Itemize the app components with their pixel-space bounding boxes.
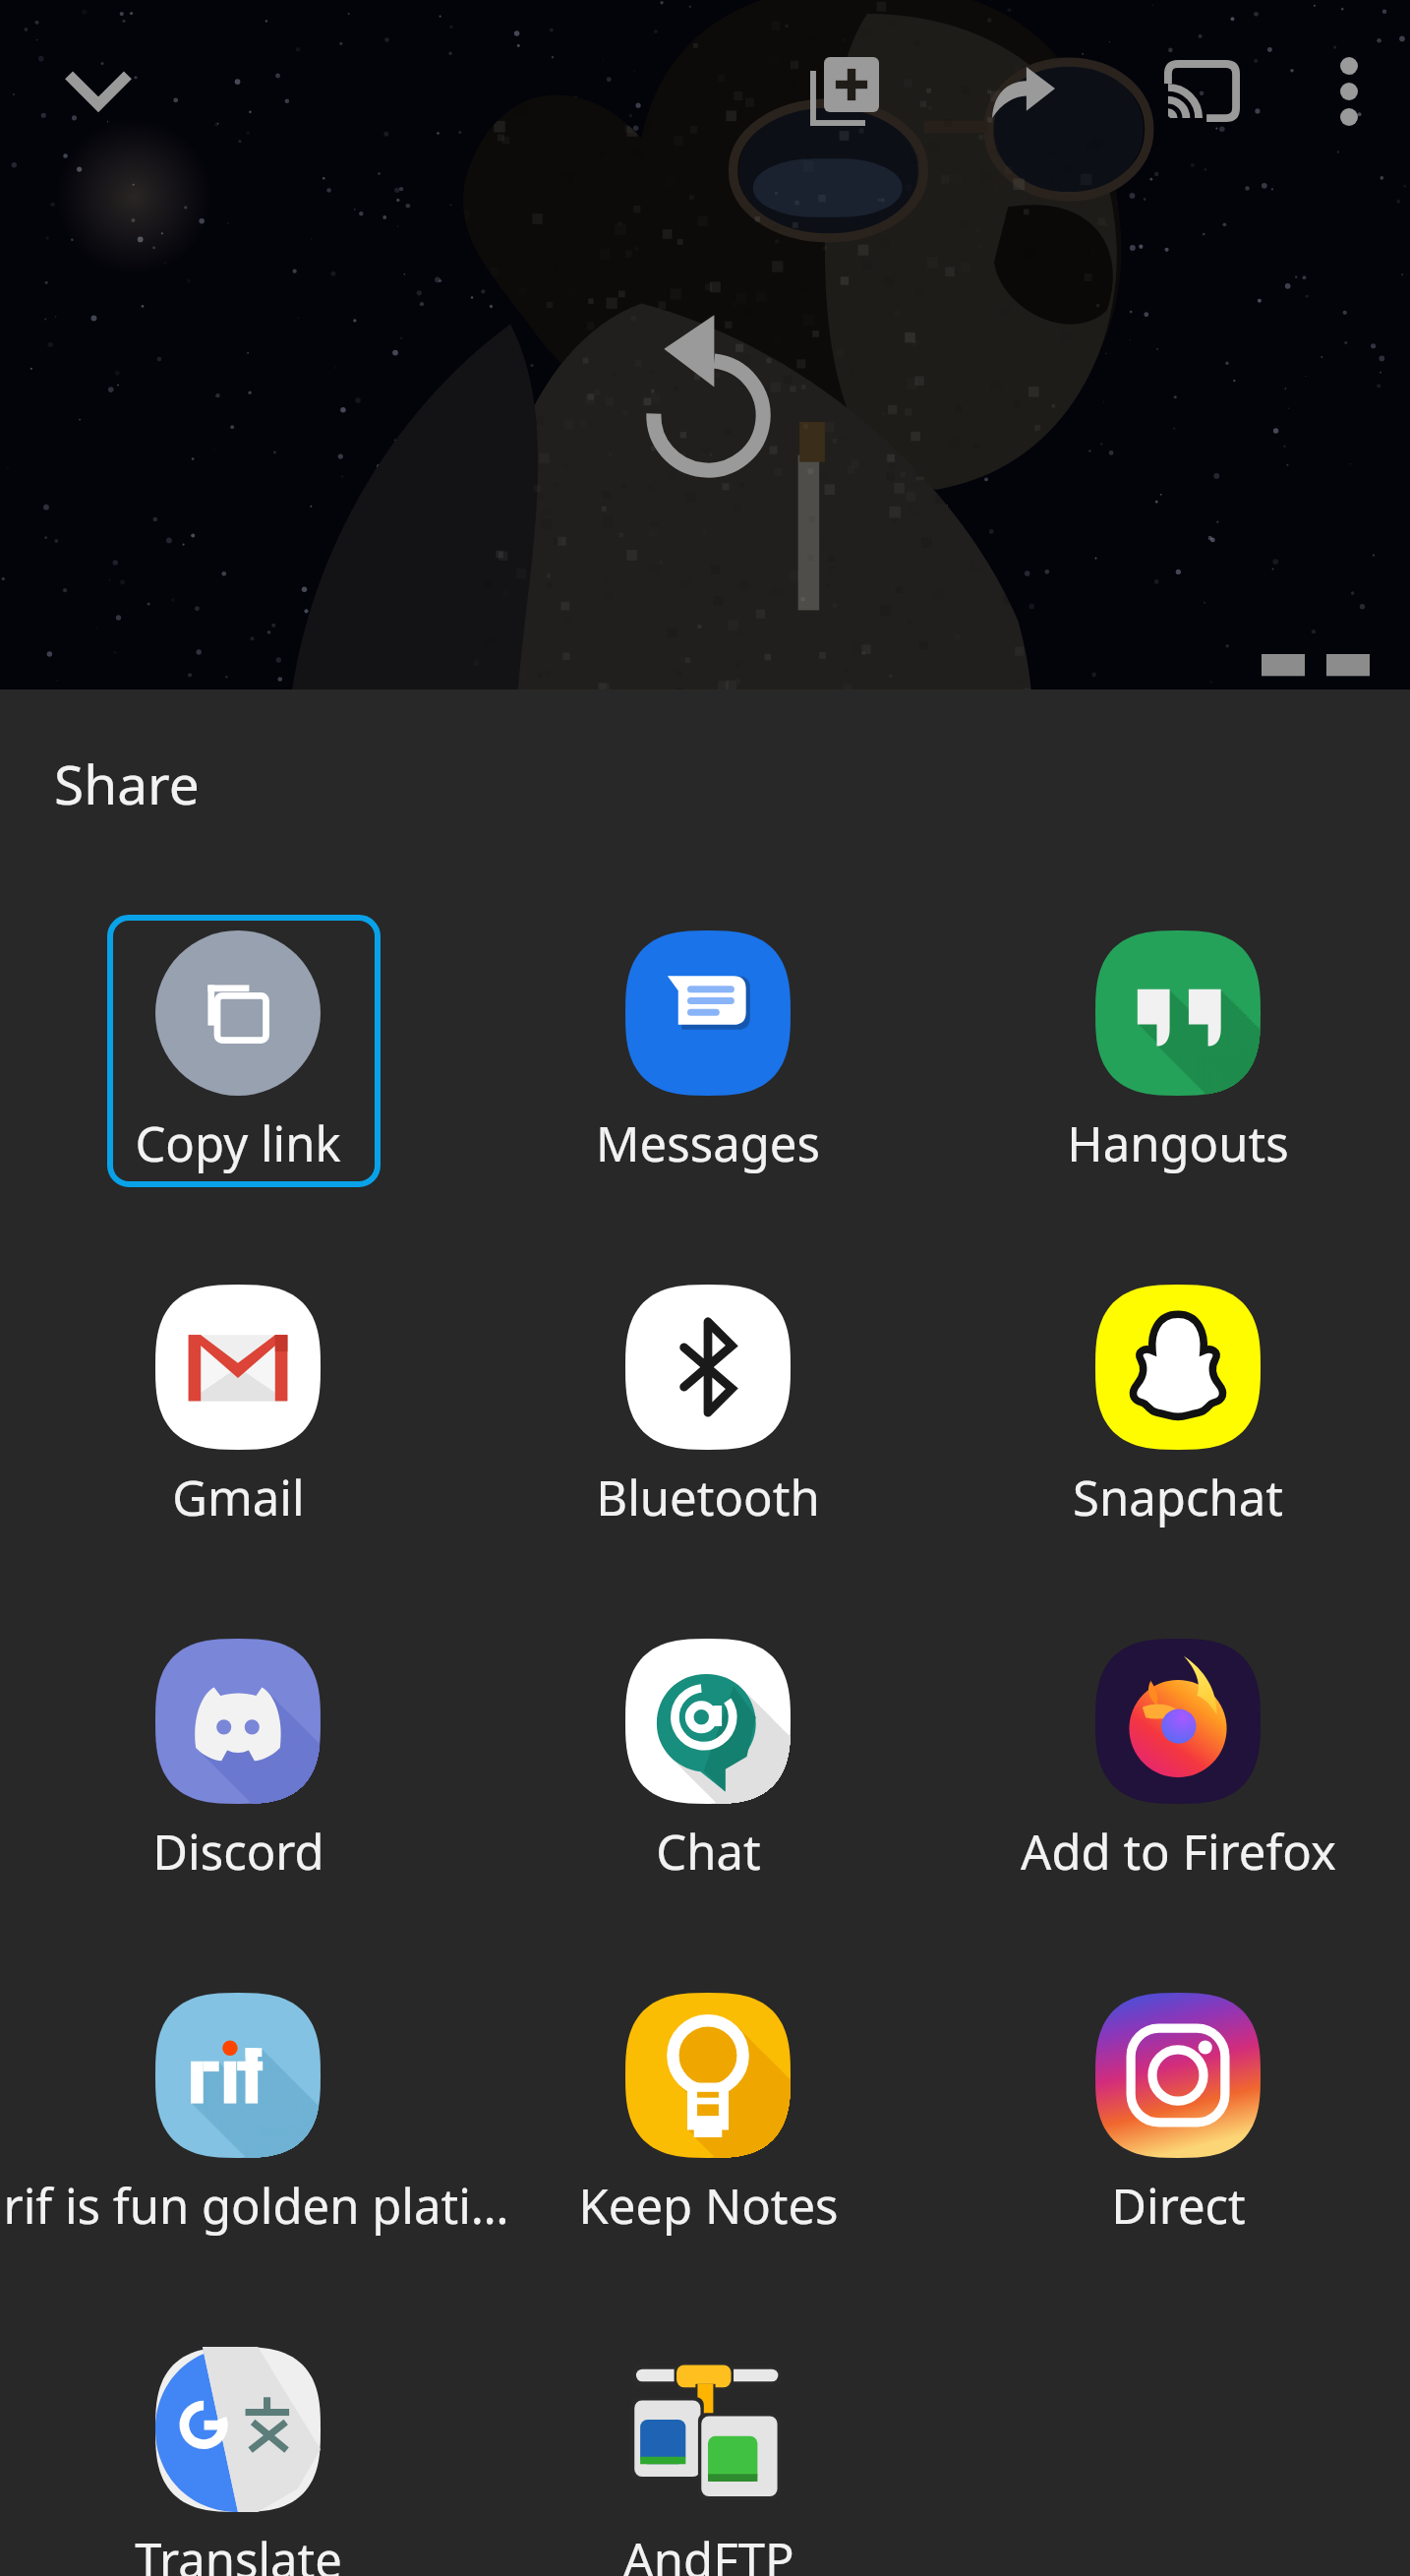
staticText: Direct: [1111, 2173, 1246, 2239]
button[interactable]: Share: [969, 37, 1079, 148]
staticText: Bluetooth: [596, 1465, 820, 1530]
button[interactable]: [101, 2331, 375, 2576]
staticText: Share: [54, 747, 200, 820]
staticText: rif is fun golden plati…: [3, 2173, 473, 2239]
staticText: Snapchat: [1073, 1465, 1283, 1530]
button[interactable]: Minimize: [49, 39, 147, 138]
button[interactable]: [101, 1623, 375, 1895]
button[interactable]: [571, 1977, 845, 2249]
staticText: Messages: [596, 1110, 820, 1176]
button[interactable]: Add to playlist: [790, 36, 900, 147]
button[interactable]: [571, 2331, 845, 2576]
button[interactable]: [571, 915, 845, 1187]
staticText: Discord: [152, 1819, 324, 1885]
staticText: Gmail: [172, 1465, 305, 1530]
staticText: AndFTP: [622, 2527, 794, 2576]
staticText: Keep Notes: [578, 2173, 839, 2239]
staticText: Hangouts: [1067, 1110, 1289, 1176]
button[interactable]: [1041, 1623, 1315, 1895]
staticText: Translate: [135, 2527, 342, 2576]
button[interactable]: [1041, 1977, 1315, 2249]
button[interactable]: Fullscreen: [1262, 654, 1370, 689]
button[interactable]: Cast: [1147, 36, 1257, 146]
button[interactable]: Replay: [629, 300, 788, 482]
button[interactable]: [571, 1269, 845, 1541]
button[interactable]: [1041, 1269, 1315, 1541]
button[interactable]: [1041, 915, 1315, 1187]
button[interactable]: [571, 1623, 845, 1895]
button[interactable]: More options: [1294, 36, 1404, 147]
button[interactable]: [107, 915, 381, 1187]
button[interactable]: [101, 1977, 375, 2249]
button[interactable]: [101, 1269, 375, 1541]
staticText: Chat: [656, 1819, 761, 1885]
staticText: Add to Firefox: [1021, 1819, 1336, 1885]
staticText: Copy link: [135, 1110, 341, 1176]
